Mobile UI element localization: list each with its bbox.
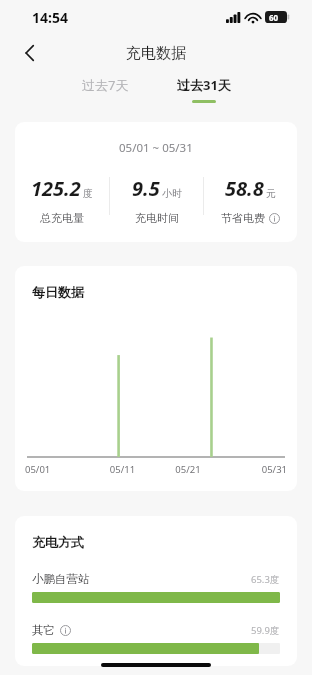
- staticText: 充电数据: [126, 44, 186, 63]
- staticText: 60: [269, 12, 279, 23]
- staticText: 过去7天: [82, 76, 129, 94]
- staticText: 过去31天: [177, 76, 231, 94]
- staticText: 每日数据: [32, 284, 84, 300]
- staticText: 小时: [162, 187, 182, 200]
- staticText: 小鹏自营站: [32, 572, 90, 586]
- button[interactable]: More info: [269, 213, 280, 224]
- staticText: 125.2: [31, 175, 81, 202]
- staticText: 05/31: [221, 463, 287, 476]
- staticText: 9.5: [132, 175, 160, 202]
- staticText: 总充电量: [40, 211, 84, 225]
- button[interactable]: 过去7天: [74, 72, 137, 104]
- staticText: 05/21: [155, 463, 221, 476]
- button[interactable]: 小鹏自营站: [15, 572, 297, 603]
- staticText: 节省电费: [221, 211, 265, 225]
- staticText: 58.8: [225, 175, 264, 202]
- button[interactable]: 其它: [15, 623, 297, 654]
- staticText: 充电时间: [135, 211, 179, 225]
- staticText: 05/01: [25, 463, 90, 476]
- staticText: 05/11: [90, 463, 155, 476]
- staticText: 其它: [32, 623, 55, 637]
- staticText: 元: [266, 187, 276, 200]
- staticText: 65.3度: [251, 573, 280, 586]
- staticText: 充电方式: [32, 534, 84, 550]
- staticText: 05/01 ~ 05/31: [119, 140, 193, 156]
- button[interactable]: More info: [60, 625, 71, 636]
- staticText: 59.9度: [251, 624, 280, 637]
- staticText: 度: [83, 187, 93, 200]
- button[interactable]: Back: [12, 36, 46, 70]
- button[interactable]: 过去31天: [169, 72, 239, 107]
- staticText: 14:54: [32, 8, 68, 27]
